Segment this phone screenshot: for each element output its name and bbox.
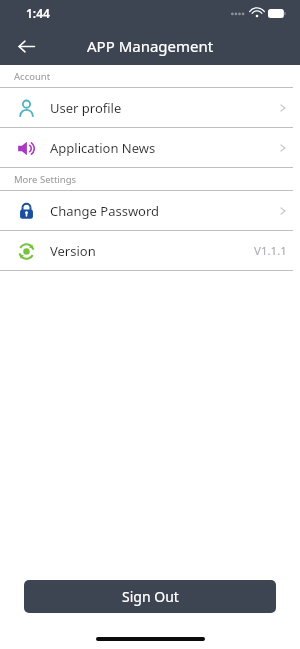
button[interactable]: Back <box>10 30 42 62</box>
button[interactable]: Sign Out <box>24 580 276 613</box>
staticText: Application News <box>50 139 156 157</box>
staticText: Version <box>50 242 96 260</box>
button[interactable]: Application News <box>0 128 300 167</box>
staticText: V1.1.1 <box>254 243 287 259</box>
staticText: Account <box>14 70 51 83</box>
staticText: 1:44 <box>26 5 50 21</box>
staticText: More Settings <box>14 173 77 186</box>
staticText: User profile <box>50 99 122 117</box>
button[interactable]: User profile <box>0 88 300 127</box>
staticText: APP Management <box>87 36 214 56</box>
button[interactable]: Version <box>0 231 300 270</box>
staticText: Change Password <box>50 202 160 220</box>
button[interactable]: Change Password <box>0 191 300 230</box>
staticText: Sign Out <box>122 587 179 606</box>
